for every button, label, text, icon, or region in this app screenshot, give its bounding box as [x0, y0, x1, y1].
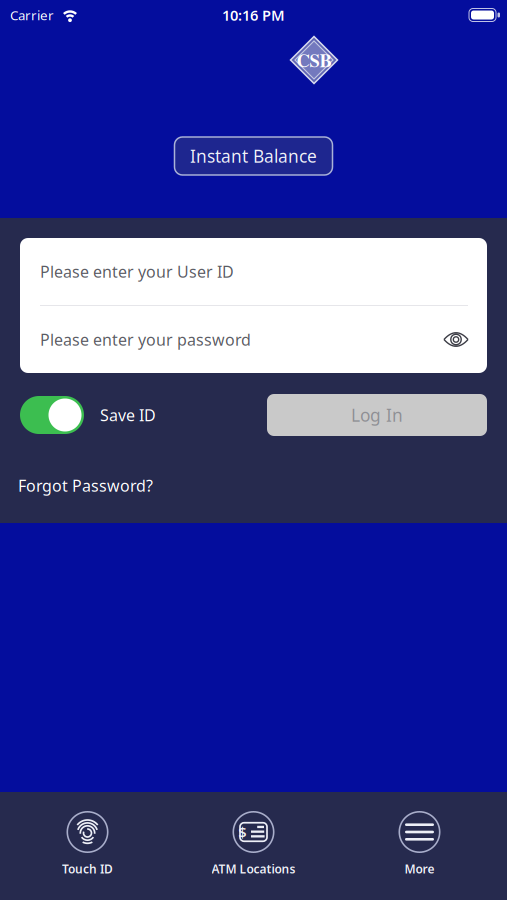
- staticText: Log In: [351, 403, 403, 426]
- staticText: Forgot Password?: [18, 475, 153, 496]
- button[interactable]: Forgot Password?: [18, 475, 153, 496]
- staticText: Please enter your User ID: [40, 261, 234, 282]
- staticText: Touch ID: [62, 861, 113, 877]
- staticText: CSB: [296, 46, 331, 74]
- staticText: Please enter your password: [40, 329, 251, 350]
- staticText: Save ID: [100, 404, 156, 426]
- button[interactable]: More: [336, 792, 502, 900]
- button[interactable]: Please enter your password: [20, 329, 251, 350]
- staticText: More: [404, 861, 434, 877]
- button[interactable]: Touch ID: [4, 792, 170, 900]
- button[interactable]: Please enter your User ID: [20, 238, 487, 305]
- staticText: $: [238, 822, 246, 842]
- staticText: ATM Locations: [211, 861, 295, 877]
- staticText: 10:16 PM: [222, 5, 285, 25]
- button[interactable]: Log In: [267, 394, 487, 436]
- staticText: Carrier: [10, 6, 54, 24]
- staticText: Instant Balance: [190, 144, 317, 167]
- button[interactable]: Instant Balance: [174, 137, 332, 175]
- button[interactable]: Save ID: [20, 396, 84, 434]
- button[interactable]: $: [170, 792, 336, 900]
- button[interactable]: Show password: [443, 330, 487, 348]
